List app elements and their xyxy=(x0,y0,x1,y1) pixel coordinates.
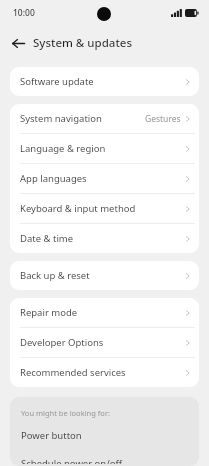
button[interactable]: Date & time xyxy=(10,224,199,253)
button[interactable]: Developer Options xyxy=(10,328,199,357)
staticText: You might be looking for: xyxy=(21,408,111,418)
staticText: Date & time xyxy=(20,232,74,245)
staticText: Recommended services xyxy=(20,366,126,379)
button[interactable]: Recommended services xyxy=(10,358,199,387)
staticText: Language & region xyxy=(20,142,106,155)
button[interactable]: Repair mode xyxy=(10,298,199,327)
staticText: Repair mode xyxy=(20,306,78,319)
button[interactable]: System navigation xyxy=(10,104,199,133)
staticText: 10:00 xyxy=(13,7,35,19)
staticText: Keyboard & input method xyxy=(20,202,136,215)
button[interactable]: Power button xyxy=(10,427,199,444)
staticText: System navigation xyxy=(20,112,102,125)
button[interactable]: Keyboard & input method xyxy=(10,194,199,223)
staticText: Gestures xyxy=(145,113,181,125)
button[interactable]: Language & region xyxy=(10,134,199,163)
staticText: Power button xyxy=(21,429,82,442)
button[interactable]: App languages xyxy=(10,164,199,193)
staticText: System & updates xyxy=(33,35,132,51)
button[interactable]: Schedule power on/off xyxy=(10,455,199,466)
button[interactable]: Software update xyxy=(10,67,199,96)
button[interactable]: Back up & reset xyxy=(10,261,199,290)
staticText: Software update xyxy=(20,75,94,88)
staticText: Developer Options xyxy=(20,336,104,349)
staticText: Back up & reset xyxy=(20,269,90,282)
button[interactable]: Back xyxy=(6,31,30,55)
staticText: App languages xyxy=(20,172,87,185)
staticText: Schedule power on/off xyxy=(21,457,123,464)
